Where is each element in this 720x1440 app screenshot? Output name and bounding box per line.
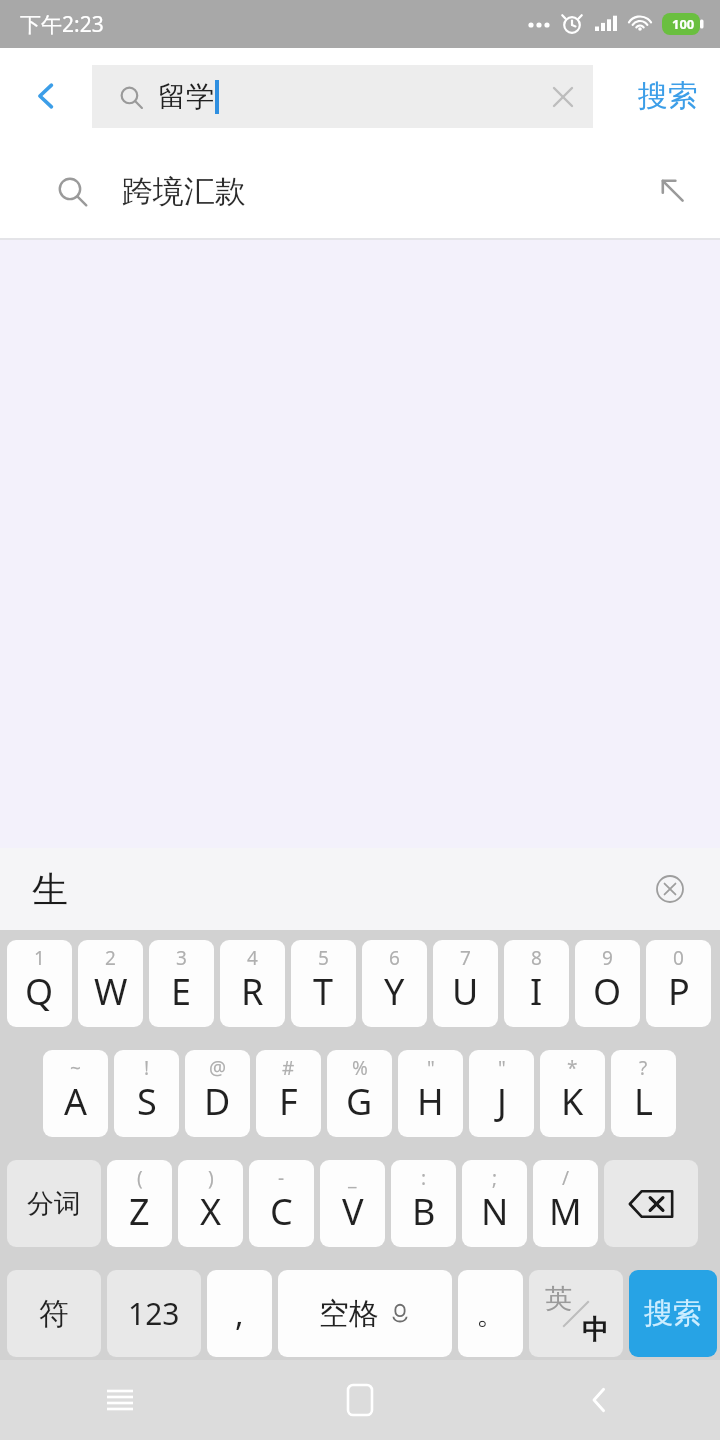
staticText: 4 bbox=[247, 945, 258, 971]
staticText: 。 bbox=[476, 1295, 506, 1333]
staticText: 9 bbox=[602, 945, 613, 971]
staticText: 符 bbox=[39, 1295, 69, 1333]
staticText: Y bbox=[384, 967, 405, 1016]
staticText: ~ bbox=[70, 1055, 81, 1081]
button[interactable]: 1 bbox=[7, 940, 72, 1027]
button[interactable]: 4 bbox=[220, 940, 285, 1027]
button[interactable]: , bbox=[207, 1270, 272, 1357]
button[interactable]: 。 bbox=[458, 1270, 523, 1357]
staticText: _ bbox=[348, 1165, 357, 1191]
staticText: R bbox=[241, 967, 264, 1016]
button[interactable]: 8 bbox=[504, 940, 569, 1027]
staticText: E bbox=[171, 967, 192, 1016]
button[interactable]: ~ bbox=[43, 1050, 108, 1137]
staticText: ( bbox=[137, 1165, 143, 1191]
button[interactable]: Space bbox=[278, 1270, 452, 1357]
button[interactable]: 留学 bbox=[92, 65, 593, 128]
button[interactable]: " bbox=[398, 1050, 463, 1137]
button[interactable]: 生 bbox=[32, 867, 68, 912]
staticText: 跨境汇款 bbox=[122, 172, 246, 211]
staticText: 中 bbox=[582, 1313, 609, 1347]
staticText: J bbox=[497, 1077, 507, 1126]
staticText: B bbox=[412, 1187, 436, 1236]
button[interactable]: % bbox=[327, 1050, 392, 1137]
staticText: * bbox=[567, 1055, 578, 1081]
staticText: 搜索 bbox=[644, 1295, 702, 1332]
staticText: A bbox=[64, 1077, 88, 1126]
button[interactable]: @ bbox=[185, 1050, 250, 1137]
staticText: I bbox=[530, 967, 543, 1016]
button[interactable]: 分词 bbox=[7, 1160, 101, 1247]
button[interactable]: " bbox=[469, 1050, 534, 1137]
staticText: M bbox=[549, 1187, 582, 1236]
button[interactable]: Home bbox=[240, 1360, 480, 1440]
button[interactable]: 搜索 bbox=[638, 48, 698, 144]
button[interactable]: 123 bbox=[107, 1270, 201, 1357]
button[interactable]: Clear bbox=[533, 67, 593, 127]
staticText: X bbox=[200, 1187, 222, 1236]
staticText: 留学 bbox=[158, 79, 214, 114]
button[interactable]: Menu bbox=[0, 1360, 240, 1440]
button[interactable]: ) bbox=[178, 1160, 243, 1247]
button[interactable]: * bbox=[540, 1050, 605, 1137]
staticText: 5 bbox=[318, 945, 329, 971]
staticText: / bbox=[562, 1165, 570, 1191]
button[interactable]: : bbox=[391, 1160, 456, 1247]
button[interactable]: 搜索 bbox=[629, 1270, 717, 1357]
staticText: S bbox=[137, 1077, 157, 1126]
button[interactable]: Language toggle bbox=[529, 1270, 623, 1357]
staticText: 1 bbox=[34, 945, 45, 971]
button[interactable]: 7 bbox=[433, 940, 498, 1027]
staticText: K bbox=[561, 1077, 584, 1126]
staticText: Z bbox=[129, 1187, 150, 1236]
staticText: F bbox=[279, 1077, 298, 1126]
button[interactable]: 6 bbox=[362, 940, 427, 1027]
staticText: # bbox=[282, 1055, 295, 1081]
staticText: ? bbox=[639, 1055, 648, 1081]
staticText: " bbox=[498, 1055, 506, 1081]
staticText: 2 bbox=[105, 945, 116, 971]
button[interactable]: 9 bbox=[575, 940, 640, 1027]
staticText: Q bbox=[25, 967, 54, 1016]
staticText: W bbox=[94, 967, 128, 1016]
button[interactable]: 跨境汇款 bbox=[0, 144, 720, 238]
staticText: G bbox=[346, 1077, 373, 1126]
button[interactable]: - bbox=[249, 1160, 314, 1247]
staticText: ! bbox=[144, 1055, 150, 1081]
button[interactable]: Close candidates bbox=[642, 861, 698, 917]
staticText: H bbox=[417, 1077, 444, 1126]
staticText: T bbox=[313, 967, 334, 1016]
staticText: 分词 bbox=[27, 1187, 81, 1221]
button[interactable]: ( bbox=[107, 1160, 172, 1247]
staticText: ; bbox=[492, 1165, 498, 1191]
staticText: L bbox=[634, 1077, 653, 1126]
button[interactable]: 0 bbox=[646, 940, 711, 1027]
staticText: 英 bbox=[545, 1282, 572, 1316]
staticText: : bbox=[421, 1165, 427, 1191]
staticText: @ bbox=[209, 1055, 227, 1081]
button[interactable]: ? bbox=[611, 1050, 676, 1137]
button[interactable]: 符 bbox=[7, 1270, 101, 1357]
staticText: C bbox=[270, 1187, 293, 1236]
staticText: P bbox=[668, 967, 690, 1016]
button[interactable]: 3 bbox=[149, 940, 214, 1027]
button[interactable]: / bbox=[533, 1160, 598, 1247]
button[interactable]: 2 bbox=[78, 940, 143, 1027]
staticText: 生 bbox=[32, 867, 68, 912]
button[interactable]: # bbox=[256, 1050, 321, 1137]
button[interactable]: Backspace bbox=[604, 1160, 698, 1247]
staticText: 100 bbox=[672, 15, 695, 33]
staticText: 空格 bbox=[319, 1295, 379, 1333]
staticText: 0 bbox=[673, 945, 684, 971]
button[interactable]: ; bbox=[462, 1160, 527, 1247]
button[interactable]: 5 bbox=[291, 940, 356, 1027]
button[interactable]: Back bbox=[0, 48, 92, 144]
button[interactable]: Fill query bbox=[640, 158, 706, 224]
staticText: 7 bbox=[460, 945, 471, 971]
staticText: ) bbox=[208, 1165, 214, 1191]
staticText: U bbox=[452, 967, 479, 1016]
button[interactable]: ! bbox=[114, 1050, 179, 1137]
staticText: - bbox=[278, 1165, 285, 1191]
button[interactable]: _ bbox=[320, 1160, 385, 1247]
